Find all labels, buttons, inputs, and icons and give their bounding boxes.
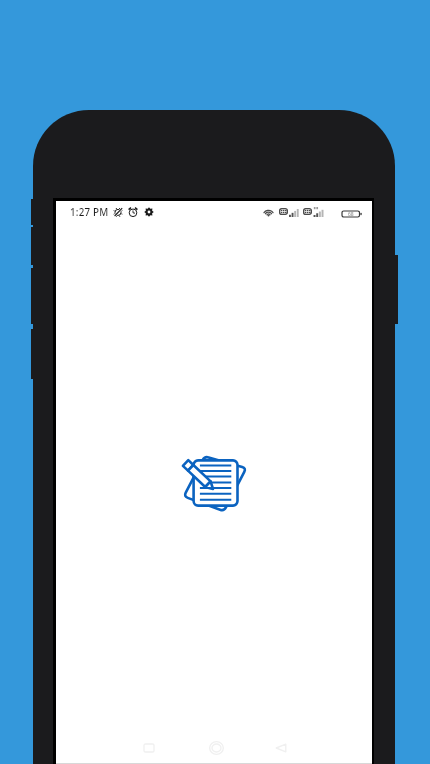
button[interactable]: Home (196, 735, 236, 761)
staticText: 1:27 PM (70, 206, 109, 219)
staticText: 68 (348, 211, 354, 218)
